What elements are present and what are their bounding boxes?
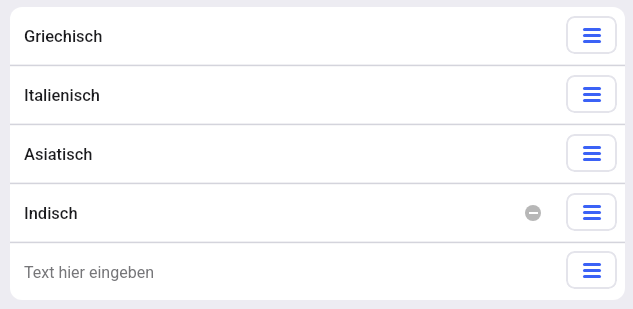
button[interactable]: Neu anordnen <box>566 134 617 172</box>
button[interactable]: Neu anordnen <box>566 193 617 231</box>
staticText: Indisch <box>24 204 78 223</box>
staticText: Italienisch <box>24 86 100 105</box>
button[interactable]: Indisch <box>10 184 625 243</box>
button[interactable]: Asiatisch <box>10 125 625 184</box>
staticText: Griechisch <box>24 27 103 46</box>
staticText: Text hier eingeben <box>24 263 154 282</box>
button[interactable]: Entfernen <box>525 205 541 221</box>
button[interactable]: Text hier eingeben <box>10 243 625 300</box>
button[interactable]: Neu anordnen <box>566 75 617 113</box>
button[interactable]: Griechisch <box>10 7 625 66</box>
button[interactable]: Italienisch <box>10 66 625 125</box>
button[interactable]: Neu anordnen <box>566 251 617 289</box>
staticText: Asiatisch <box>24 145 93 164</box>
button[interactable]: Neu anordnen <box>566 16 617 54</box>
